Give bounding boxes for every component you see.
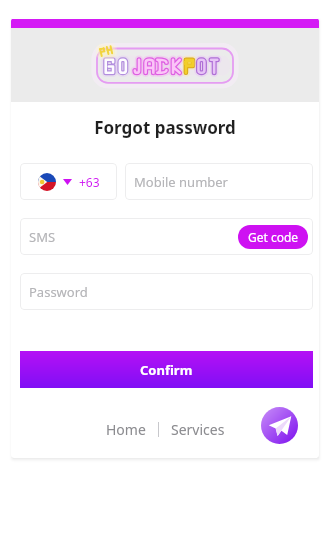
staticText: Mobile number — [134, 173, 228, 191]
button[interactable]: Get code — [238, 225, 308, 249]
button[interactable]: Confirm — [20, 351, 313, 388]
staticText: Services — [171, 420, 225, 439]
button[interactable]: Country code +63 — [20, 163, 117, 200]
staticText: Get code — [248, 229, 299, 245]
staticText: Home — [106, 420, 146, 439]
staticText: SMS — [29, 228, 56, 246]
button[interactable]: Password — [20, 273, 313, 310]
button[interactable]: Services — [165, 414, 231, 445]
button[interactable]: Home — [100, 414, 152, 445]
staticText: Forgot password — [11, 116, 319, 139]
staticText: +63 — [79, 174, 100, 190]
button[interactable]: Send message — [261, 407, 298, 444]
staticText: Password — [29, 283, 88, 301]
button[interactable]: Mobile number — [125, 163, 313, 200]
staticText: Confirm — [140, 361, 193, 379]
